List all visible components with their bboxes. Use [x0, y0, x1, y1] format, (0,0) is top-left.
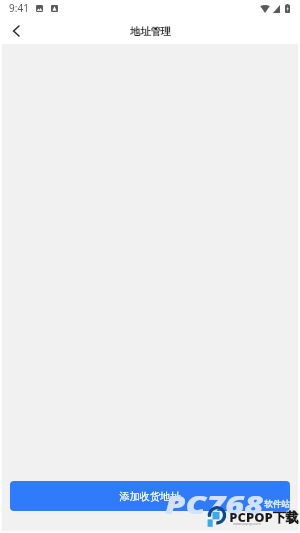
staticText: 软件站 [264, 499, 290, 510]
staticText: PC768 [165, 487, 263, 521]
staticText: www.pcpop.com [233, 521, 261, 526]
staticText: 9:41 [9, 1, 29, 15]
button[interactable]: 添加收货地址 [10, 481, 290, 511]
staticText: 地址管理 [130, 25, 171, 38]
staticText: 添加收货地址 [119, 490, 181, 503]
button[interactable]: Back [0, 16, 30, 44]
staticText: PCPOP下载 [229, 508, 299, 526]
